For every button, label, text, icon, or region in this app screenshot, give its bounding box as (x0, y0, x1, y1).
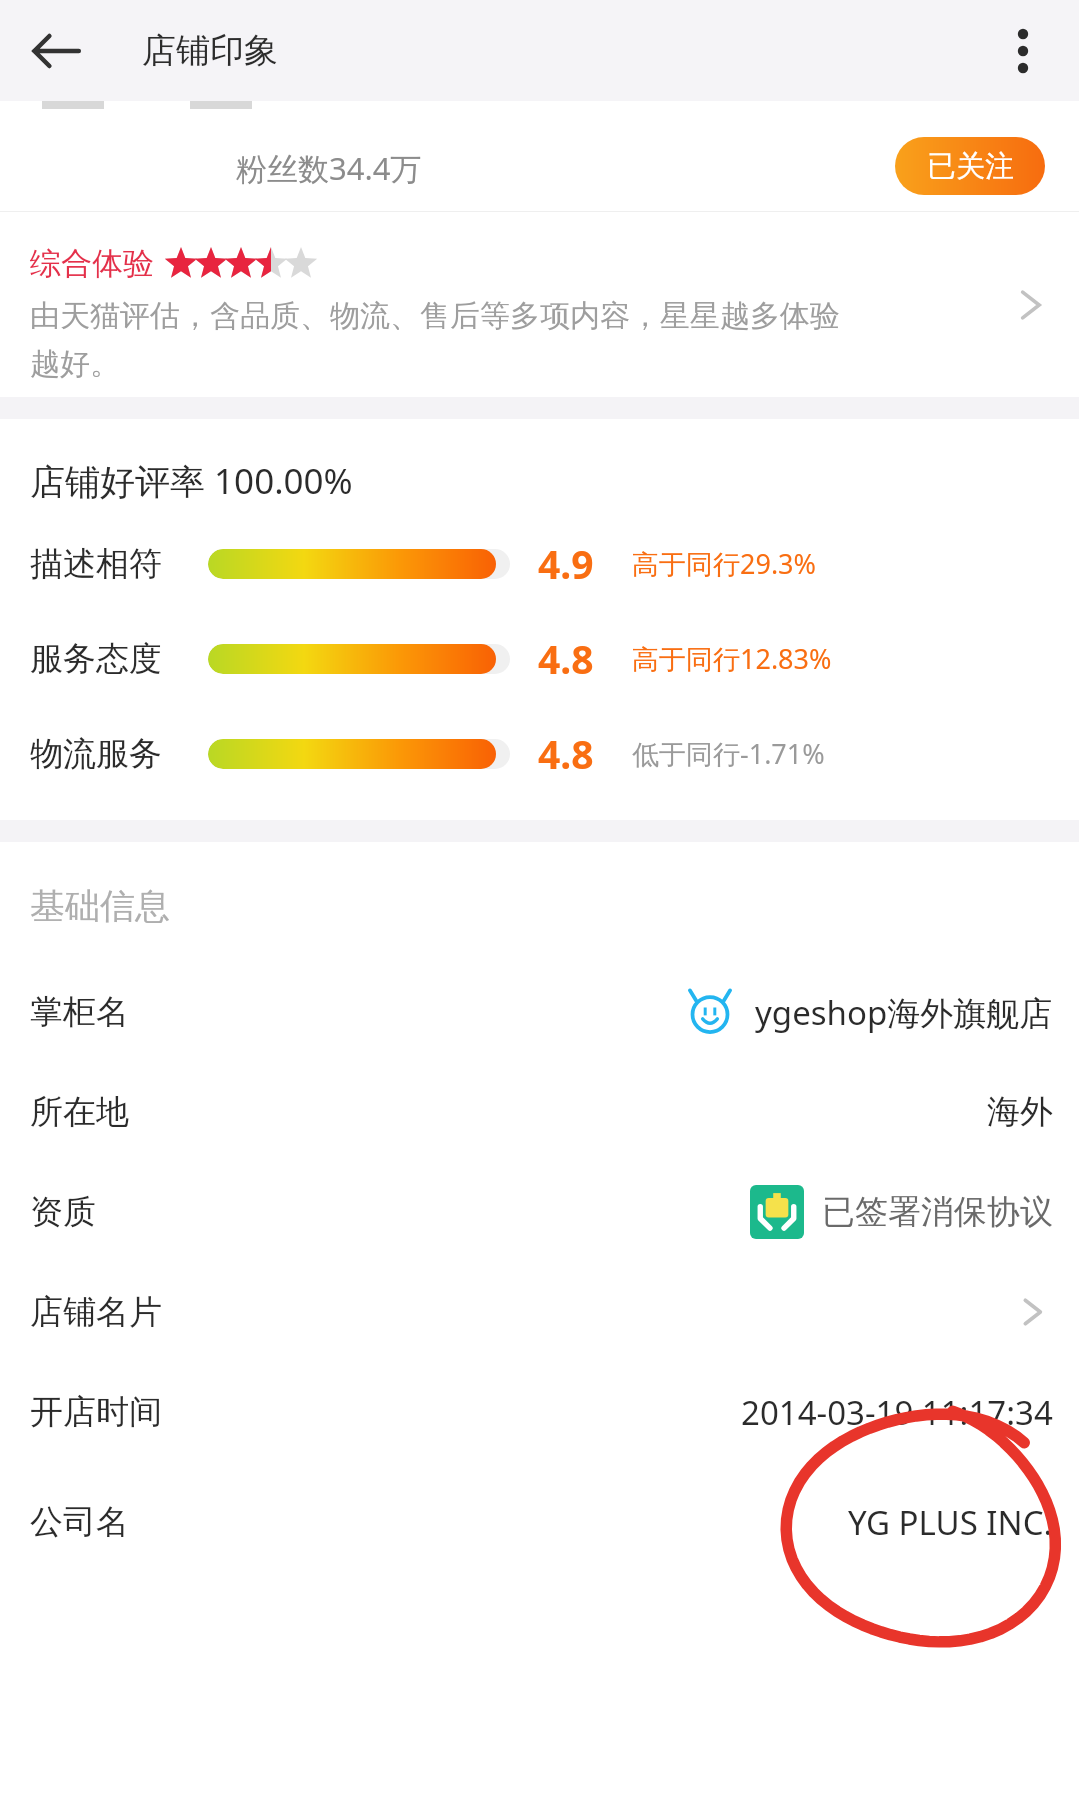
staticText: 服务态度 (30, 638, 208, 680)
staticText: 所在地 (30, 1091, 129, 1133)
staticText: 由天猫评估，含品质、物流、售后等多项内容，星星越多体验 越好。 (30, 297, 910, 383)
staticText: ygeshop海外旗舰店 (755, 990, 1053, 1035)
staticText: 店铺名片 (30, 1291, 162, 1333)
staticText: 物流服务 (30, 733, 208, 775)
button[interactable]: 已关注 (895, 137, 1045, 195)
staticText: 粉丝数34.4万 (236, 147, 422, 189)
staticText: 4.8 (538, 632, 612, 685)
staticText: 低于同行-1.71% (632, 735, 825, 772)
staticText: 公司名 (30, 1501, 129, 1543)
button[interactable]: Back (26, 21, 86, 81)
staticText: 店铺印象 (142, 29, 278, 72)
button[interactable]: More options (993, 21, 1053, 81)
staticText: YG PLUS INC. (848, 1500, 1053, 1545)
staticText: 基础信息 (30, 884, 170, 928)
staticText: 高于同行12.83% (632, 640, 832, 677)
staticText: 4.9 (538, 537, 612, 590)
staticText: 4.8 (538, 727, 612, 780)
staticText: 开店时间 (30, 1391, 162, 1433)
staticText: 2014-03-19 11:17:34 (741, 1390, 1053, 1435)
staticText: 描述相符 (30, 543, 208, 585)
staticText: 掌柜名 (30, 991, 129, 1033)
staticText: 已签署消保协议 (822, 1191, 1053, 1233)
staticText: 已关注 (927, 148, 1014, 185)
staticText: 海外 (987, 1091, 1053, 1133)
button[interactable]: 综合体验 (0, 212, 1079, 397)
staticText: 综合体验 (30, 244, 154, 283)
button[interactable]: 店铺名片 (0, 1262, 1079, 1362)
staticText: 高于同行29.3% (632, 545, 817, 582)
staticText: 资质 (30, 1191, 96, 1233)
staticText: 店铺好评率 100.00% (30, 457, 353, 505)
